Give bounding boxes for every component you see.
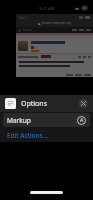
staticText: Forums: [23, 28, 33, 32]
button[interactable]: Markup: [3, 113, 90, 127]
staticText: 9:41 AM: [39, 6, 55, 11]
staticText: A: [80, 117, 84, 124]
staticText: Edit Actions…: [7, 131, 48, 140]
staticText: Tab 1: [19, 16, 27, 20]
staticText: forum.example.org: [42, 21, 71, 25]
staticText: Options: [21, 99, 48, 109]
button[interactable]: Close: [79, 99, 88, 108]
button[interactable]: Edit Actions…: [0, 128, 93, 142]
staticText: Markup: [7, 116, 31, 125]
button[interactable]: Options: [0, 95, 93, 112]
